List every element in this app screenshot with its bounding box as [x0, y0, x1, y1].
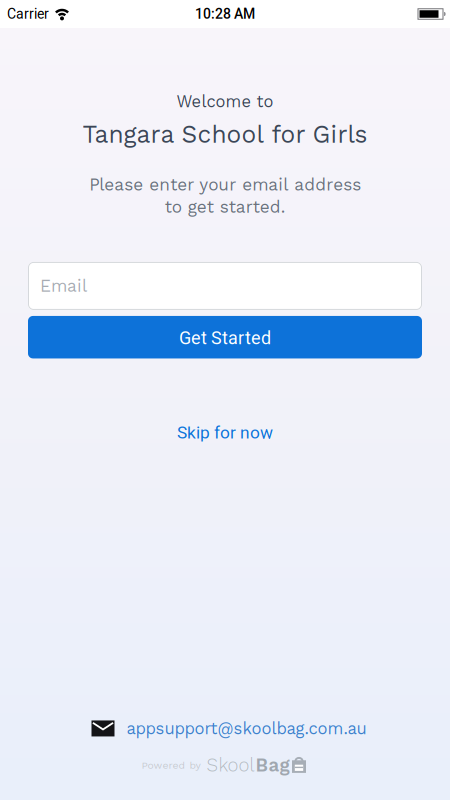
- button[interactable]: Get Started: [28, 316, 422, 358]
- staticText: Email: [40, 276, 87, 296]
- staticText: Skool: [206, 754, 254, 776]
- staticText: Skip for now: [177, 422, 273, 443]
- staticText: Get Started: [179, 328, 271, 349]
- staticText: Email: [40, 276, 87, 296]
- staticText: Welcome to: [176, 92, 273, 111]
- staticText: Bag: [255, 754, 289, 776]
- staticText: Powered by: [141, 759, 200, 771]
- staticText: Tangara School for Girls: [82, 120, 367, 149]
- textField[interactable]: Email: [40, 276, 422, 296]
- staticText: Please enter your email address to get s…: [89, 175, 361, 217]
- button[interactable]: Skip for now: [177, 422, 273, 443]
- button[interactable]: appsupport@skoolbag.com.au: [83, 719, 366, 738]
- staticText: appsupport@skoolbag.com.au: [126, 719, 366, 738]
- staticText: 10:28 AM: [195, 6, 255, 22]
- staticText: Carrier: [7, 6, 49, 22]
